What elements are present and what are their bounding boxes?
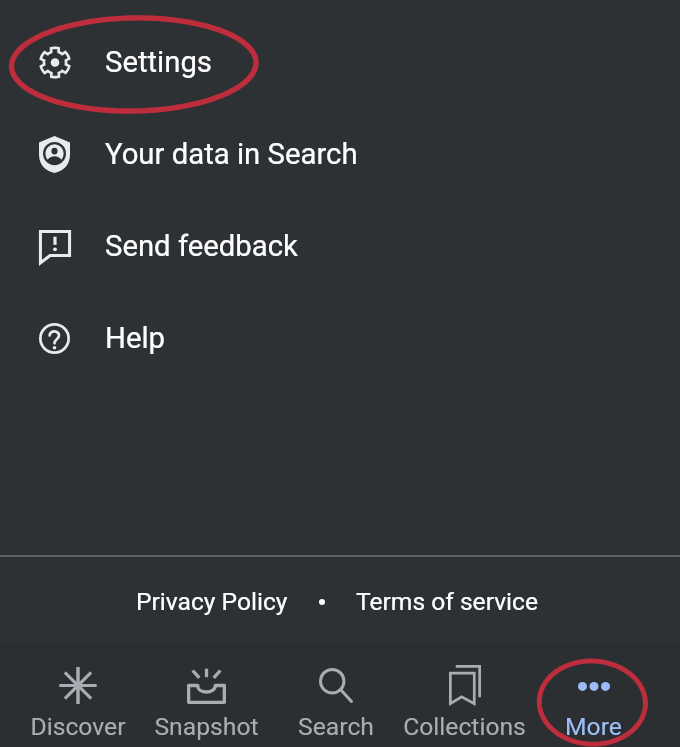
staticText: Settings	[105, 45, 212, 79]
staticText: Discover	[30, 712, 126, 741]
button[interactable]: Help	[0, 292, 680, 384]
staticText: Search	[298, 712, 374, 741]
button[interactable]: Privacy Policy	[126, 575, 298, 628]
staticText: Privacy Policy	[136, 587, 288, 616]
staticText: Your data in Search	[105, 137, 358, 171]
button[interactable]: Discover	[13, 643, 142, 747]
button[interactable]: Collections	[400, 643, 529, 747]
button[interactable]: Your data in Search	[0, 108, 680, 200]
staticText: More	[565, 712, 622, 741]
button[interactable]: Search	[271, 643, 400, 747]
button[interactable]: Send feedback	[0, 200, 680, 292]
button[interactable]: Settings	[0, 16, 680, 108]
button[interactable]: Terms of service	[346, 575, 548, 628]
staticText: Send feedback	[105, 229, 298, 263]
button[interactable]: Snapshot	[142, 643, 271, 747]
staticText: Terms of service	[356, 587, 538, 616]
staticText: Help	[105, 321, 166, 355]
staticText: Collections	[403, 712, 526, 741]
staticText: Snapshot	[154, 712, 259, 741]
button[interactable]: More	[529, 643, 658, 747]
